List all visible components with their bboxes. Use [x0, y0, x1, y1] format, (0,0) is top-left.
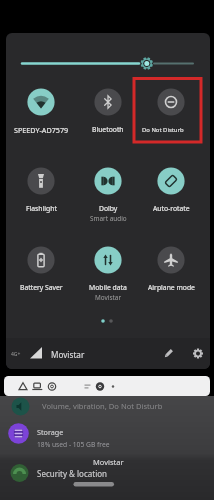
staticText: SPEEDY-AD7579	[14, 125, 69, 135]
staticText: Storage	[37, 427, 64, 437]
staticText: Movistar	[95, 293, 122, 302]
button[interactable]	[0, 420, 214, 450]
button[interactable]: Battery Saver	[7, 246, 75, 294]
button[interactable]: Do Not Disturb	[137, 88, 205, 136]
button[interactable]: Airplane mode	[137, 246, 205, 294]
staticText: Do Not Disturb	[142, 126, 184, 134]
button[interactable]	[4, 376, 210, 396]
staticText: Security & location	[37, 468, 108, 479]
staticText: Airplane mode	[148, 283, 195, 292]
staticText: Dolby	[99, 204, 118, 213]
staticText: Mobile data	[89, 283, 127, 292]
staticText: Volume, vibration, Do Not Disturb	[42, 401, 163, 411]
button[interactable]: Dolby	[74, 167, 142, 229]
button[interactable]: Mobile data	[74, 246, 142, 308]
staticText: Auto-rotate	[153, 204, 190, 213]
staticText: Flashlight	[26, 204, 57, 213]
staticText: Bluetooth	[92, 125, 124, 134]
button[interactable]: Auto-rotate	[137, 167, 205, 215]
staticText: Movistar	[93, 457, 124, 467]
staticText: Battery Saver	[20, 283, 63, 292]
button[interactable]	[6, 338, 210, 369]
button[interactable]: SPEEDY-AD7579	[7, 88, 75, 136]
staticText: Movistar	[51, 349, 85, 360]
button[interactable]	[0, 397, 214, 416]
button[interactable]	[0, 465, 214, 482]
staticText: 4G+	[11, 351, 21, 358]
button[interactable]: Bluetooth	[74, 88, 142, 136]
button[interactable]: Flashlight	[7, 167, 75, 215]
staticText: Smart audio	[90, 214, 127, 223]
staticText: 18% used - 105 GB free	[37, 440, 110, 449]
